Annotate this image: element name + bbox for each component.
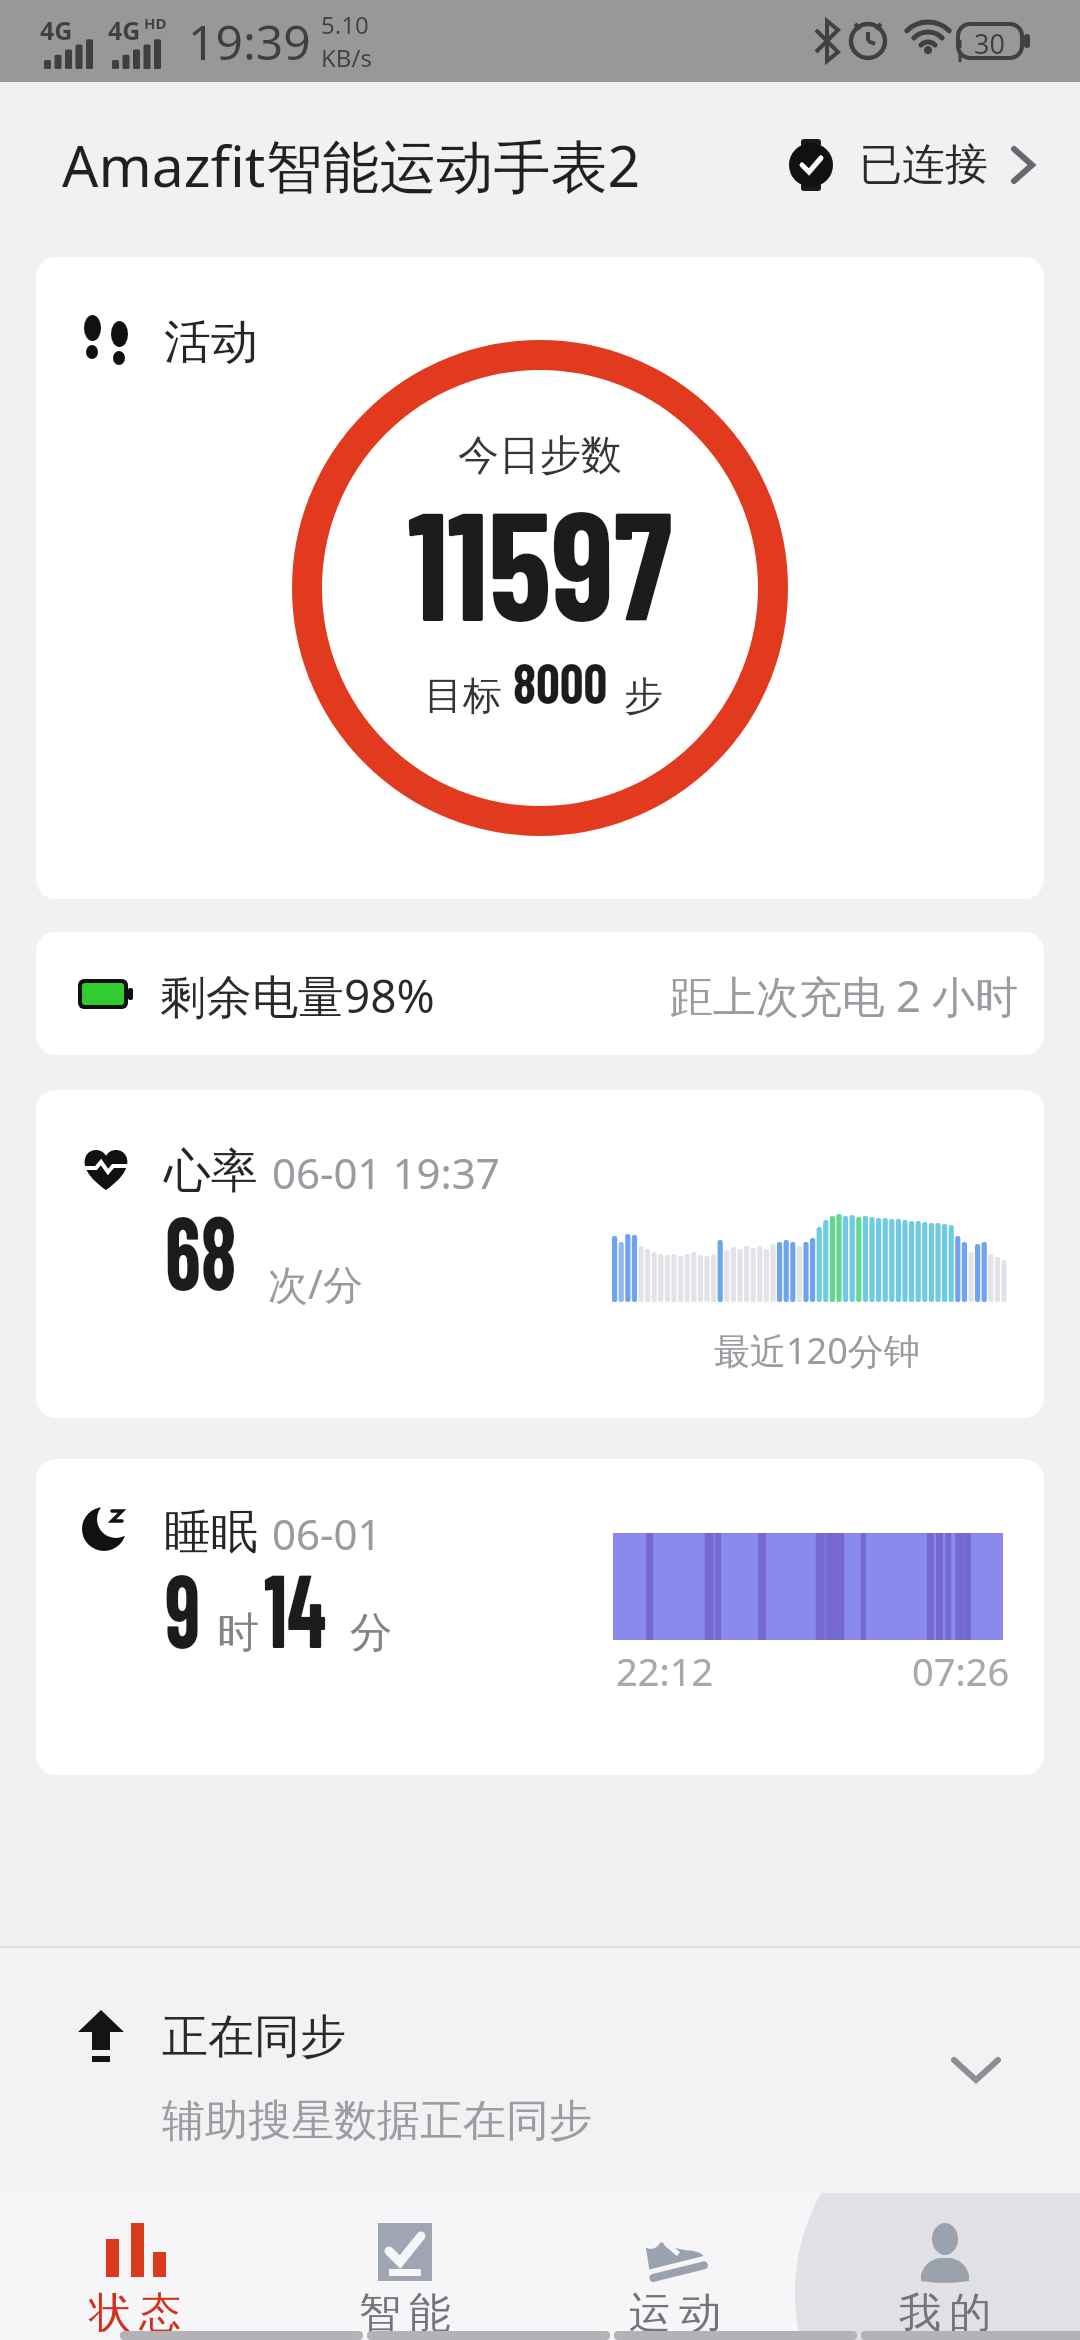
staticText: 目标 [424,671,502,720]
staticText: KB/s [321,41,372,74]
button[interactable]: 睡眠 [36,1459,1044,1775]
staticText: 今日步数 [36,430,1044,482]
button[interactable]: 已连接 [785,138,1038,192]
staticText: 5.10 [321,8,369,41]
staticText: 我的 [895,2287,995,2340]
staticText: 9 [165,1544,201,1669]
button[interactable]: 状态 [0,2193,270,2340]
button[interactable]: 智能 [270,2193,540,2340]
staticText: 4G [40,13,73,47]
staticText: 11597 [66,468,1014,652]
staticText: 最近120分钟 [714,1326,920,1375]
staticText: 22:12 [616,1645,714,1697]
staticText: 07:26 [912,1645,1010,1697]
button[interactable]: 运动 [540,2193,810,2340]
staticText: 30 [974,25,1005,62]
staticText: HD [144,13,167,33]
staticText: 辅助搜星数据正在同步 [162,2094,592,2148]
staticText: 正在同步 [162,2008,346,2066]
staticText: 8000 [513,647,608,715]
staticText: 步 [624,671,663,720]
button[interactable]: 心率 [36,1090,1044,1418]
staticText: 分 [350,1607,392,1660]
staticText: 心率 [164,1142,258,1201]
staticText: 智能 [355,2287,455,2340]
staticText: 已连接 [859,138,988,192]
staticText: 14 [264,1544,326,1669]
staticText: 4G [108,13,141,47]
staticText: 距上次充电 2 小时 [670,966,1018,1025]
staticText: 06-01 [272,1505,382,1562]
button[interactable]: 正在同步 [0,1948,1080,2193]
staticText: 睡眠 [164,1503,258,1562]
staticText: 剩余电量98% [160,964,435,1027]
staticText: 时 [217,1607,259,1660]
button[interactable]: 我的 [810,2193,1080,2340]
button[interactable]: 剩余电量98% [36,932,1044,1055]
button[interactable]: 活动 [36,257,1044,899]
staticText: 状态 [85,2287,185,2340]
staticText: Amazfit智能运动手表2 [62,126,640,204]
staticText: 06-01 19:37 [272,1144,500,1201]
staticText: 68 [165,1186,237,1311]
staticText: 19:39 [188,9,311,74]
staticText: 次/分 [268,1256,363,1311]
staticText: 运动 [625,2287,725,2340]
staticText: 活动 [164,313,258,372]
